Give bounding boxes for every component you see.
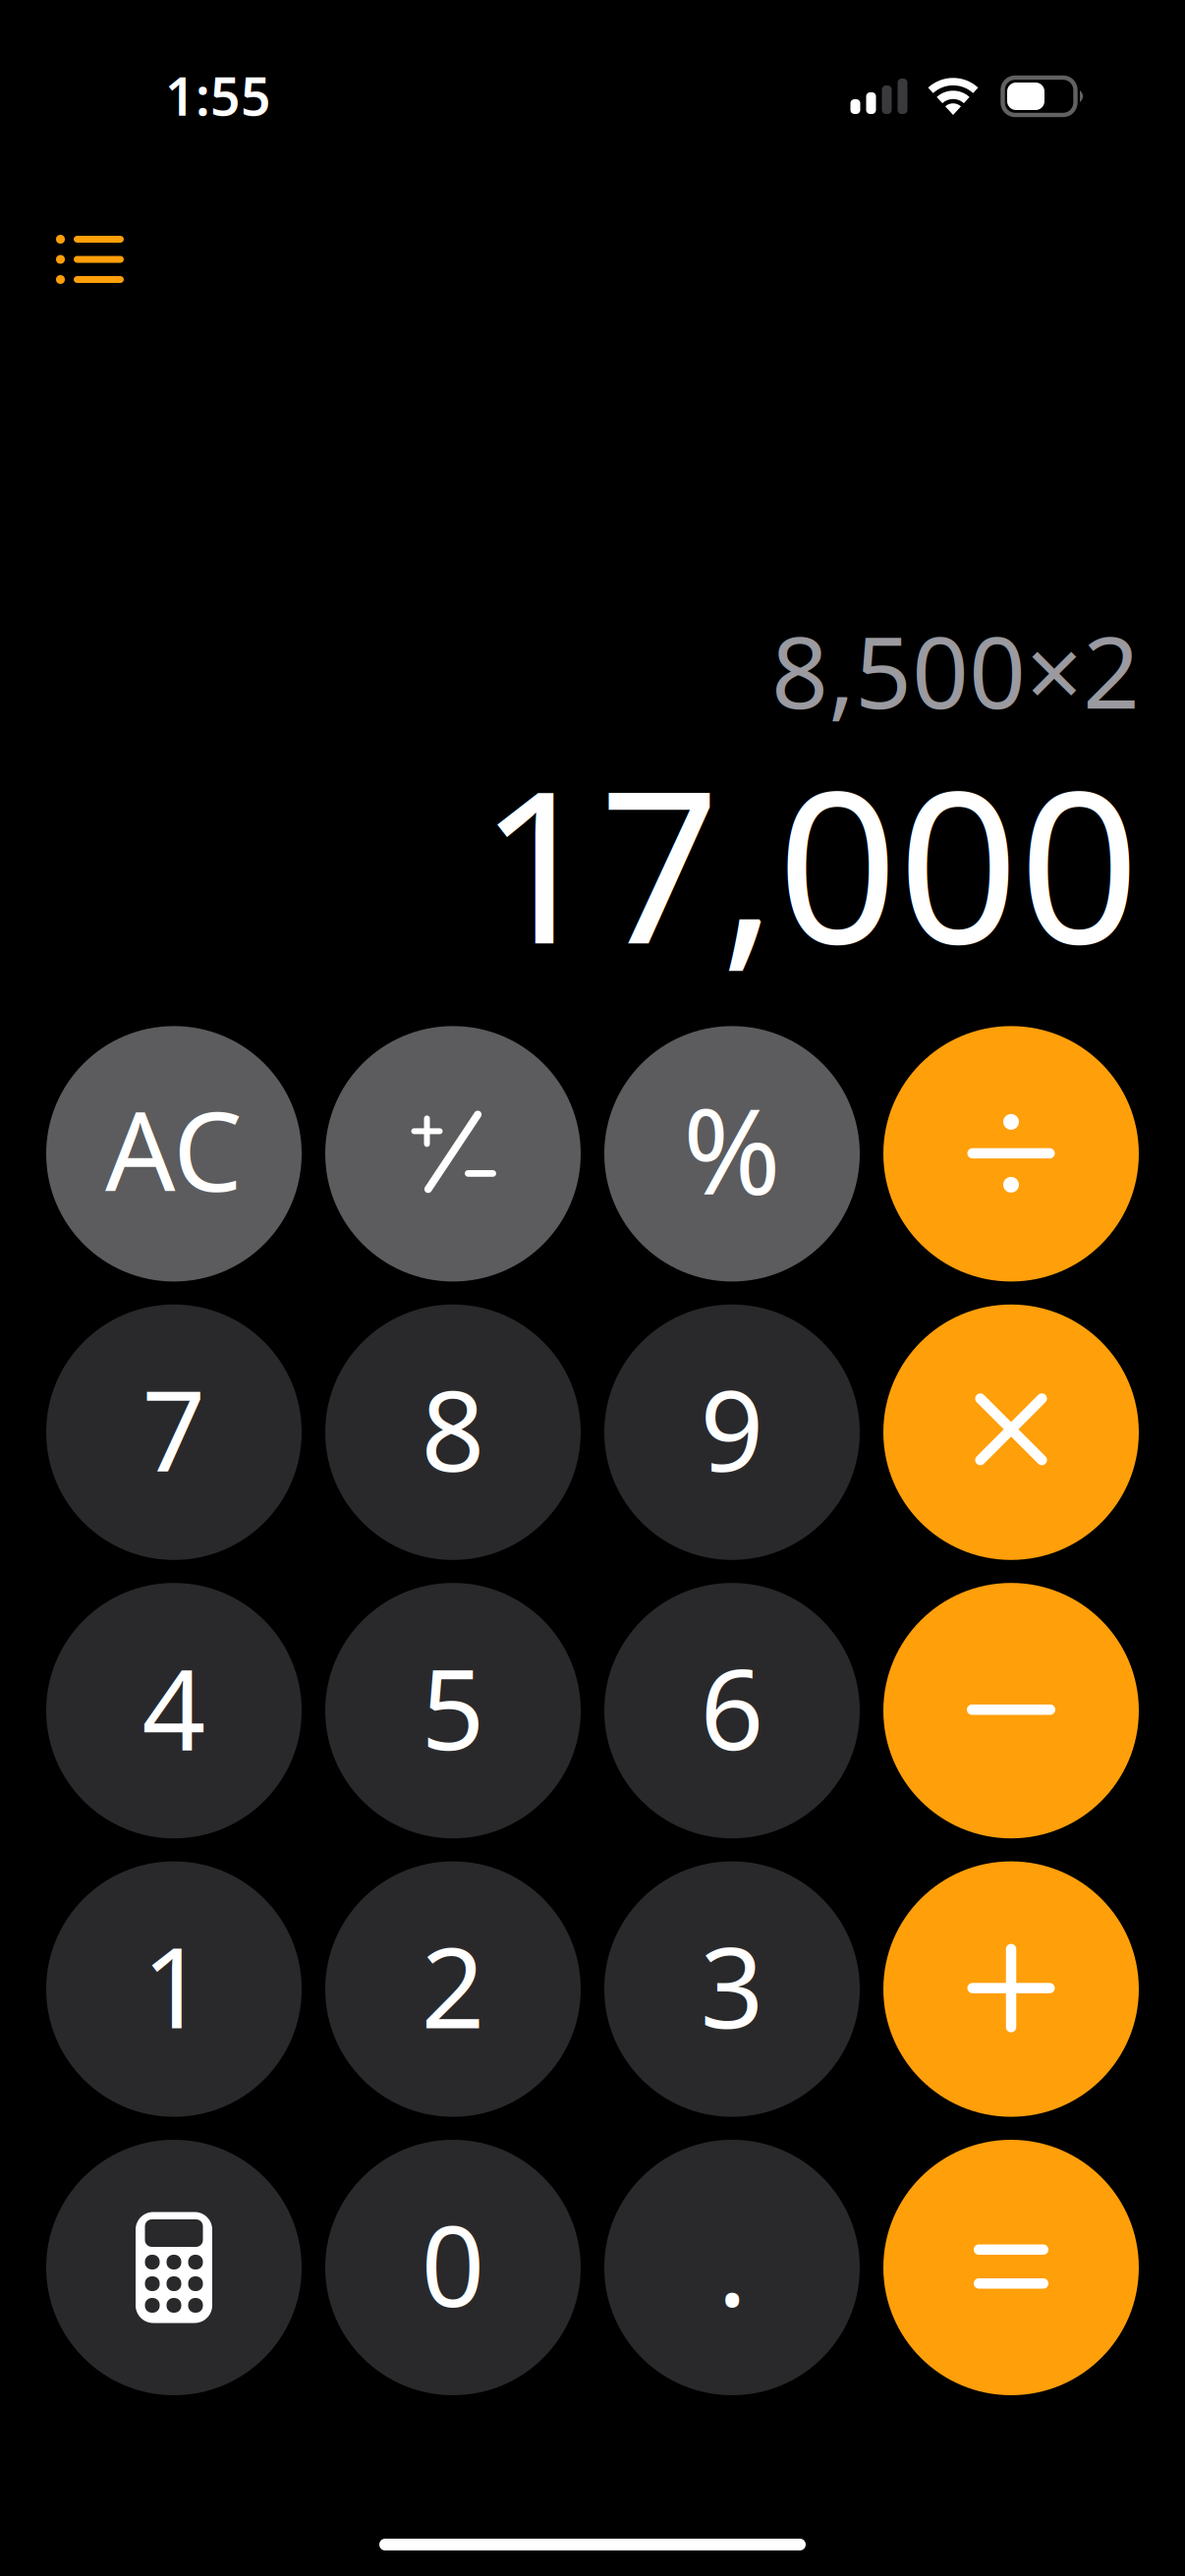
button[interactable]: History	[34, 209, 145, 309]
button[interactable]: Equals	[883, 2140, 1139, 2395]
staticText: 7	[142, 1354, 206, 1502]
staticText: .	[717, 2189, 747, 2336]
button[interactable]: 6	[604, 1583, 860, 1838]
button[interactable]: Divide	[883, 1026, 1139, 1282]
staticText: 9	[700, 1354, 764, 1502]
staticText: 8	[421, 1354, 485, 1502]
button[interactable]: 8	[325, 1305, 581, 1560]
button[interactable]: 0	[325, 2140, 581, 2395]
staticText: 2	[421, 1911, 485, 2059]
staticText: 4	[142, 1633, 206, 1781]
staticText: 5	[421, 1633, 485, 1781]
staticText: 0	[421, 2190, 485, 2337]
staticText: 1	[142, 1911, 206, 2059]
staticText: %	[683, 1071, 781, 1227]
button[interactable]: 1	[46, 1861, 302, 2117]
button[interactable]: Multiply	[883, 1305, 1139, 1560]
button[interactable]: .	[604, 2140, 860, 2395]
button[interactable]: Minus	[883, 1583, 1139, 1838]
button[interactable]: AC	[46, 1026, 302, 1282]
staticText: 1:55	[165, 61, 271, 130]
button[interactable]: 9	[604, 1305, 860, 1560]
staticText: 6	[700, 1633, 764, 1781]
button[interactable]: Plus	[883, 1861, 1139, 2117]
staticText: 17,000	[479, 721, 1140, 1002]
button[interactable]: 7	[46, 1305, 302, 1560]
button[interactable]: %	[604, 1026, 860, 1282]
staticText: AC	[105, 1076, 243, 1222]
button[interactable]: 2	[325, 1861, 581, 2117]
button[interactable]: Plus minus	[325, 1026, 581, 1282]
button[interactable]: 4	[46, 1583, 302, 1838]
button[interactable]: 5	[325, 1583, 581, 1838]
button[interactable]: Calculator	[46, 2140, 302, 2395]
staticText: 8,500×2	[771, 604, 1140, 736]
button[interactable]: 3	[604, 1861, 860, 2117]
staticText: 3	[700, 1911, 764, 2059]
